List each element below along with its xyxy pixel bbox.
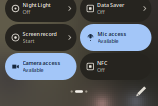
staticText: Available (97, 37, 118, 45)
staticText: Night Light (22, 1, 50, 8)
button[interactable]: Page indicator (61, 87, 97, 96)
staticText: Camera access (22, 59, 60, 66)
staticText: Off (22, 8, 30, 16)
staticText: Available (22, 66, 43, 74)
button[interactable]: Data Saver (80, 0, 151, 22)
staticText: Start (22, 37, 34, 45)
staticText: Mic access (97, 30, 126, 37)
staticText: Data Saver (97, 1, 124, 8)
button[interactable]: Screen record (5, 24, 76, 51)
staticText: Screen record (22, 30, 56, 37)
button[interactable]: Night Light (5, 0, 76, 22)
button[interactable]: Edit tiles (136, 86, 147, 97)
button[interactable]: Mic access (80, 24, 151, 51)
staticText: Off (97, 66, 105, 74)
staticText: Off (97, 8, 105, 16)
button[interactable]: Camera access (5, 53, 76, 80)
staticText: NFC (97, 59, 107, 66)
button[interactable]: NFC (80, 53, 151, 80)
